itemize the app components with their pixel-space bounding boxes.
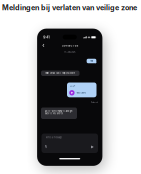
staticText: Meldingen bij verlaten van veilige zone — [2, 3, 137, 12]
staticText: Contact us — [62, 44, 78, 47]
button[interactable]: Back — [40, 42, 47, 49]
staticText: Delivered — [91, 101, 98, 103]
staticText: Hello! What can I help you with? — [45, 72, 75, 74]
staticText: Got it! We'll review it and get back to … — [45, 110, 73, 115]
staticText: Video player — [76, 92, 86, 94]
staticText: 15 JAN 2025 — [64, 51, 75, 53]
staticText: a.mp4 — [70, 85, 75, 87]
staticText: Write a message — [46, 136, 62, 139]
staticText: 9:41 — [43, 35, 49, 39]
staticText: Hello — [90, 60, 93, 62]
button[interactable]: Write a message — [41, 133, 98, 153]
